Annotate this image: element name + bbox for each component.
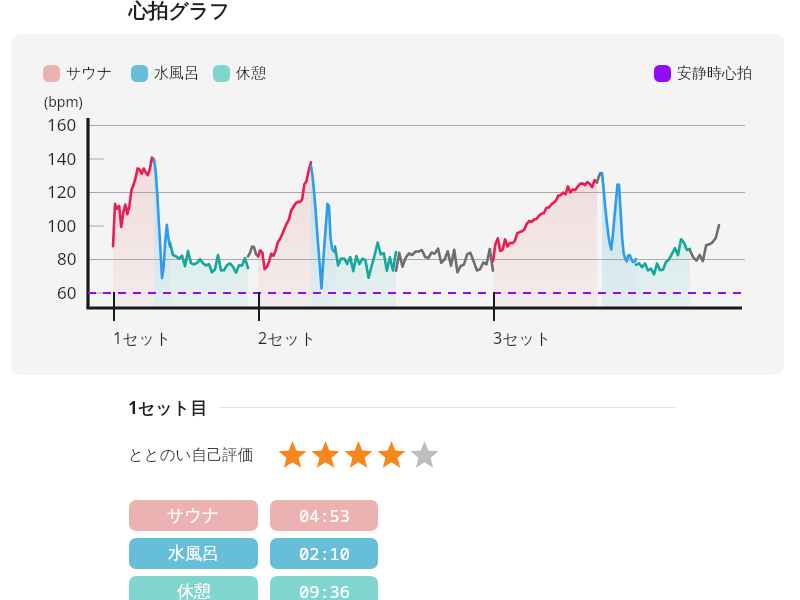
staticText: 60: [57, 281, 77, 304]
staticText: 休憩: [177, 581, 211, 600]
staticText: サウナ: [66, 64, 113, 83]
button[interactable]: 水風呂: [131, 64, 199, 83]
staticText: 80: [57, 247, 77, 270]
button[interactable]: Rate ${i + 1} star: [408, 440, 441, 470]
staticText: 水風呂: [168, 543, 219, 564]
staticText: サウナ: [167, 505, 220, 526]
staticText: 160: [47, 113, 77, 136]
staticText: 04:53: [299, 504, 350, 527]
staticText: 09:36: [299, 580, 350, 600]
staticText: ととのい自己評価: [128, 445, 254, 465]
staticText: 100: [47, 214, 77, 237]
button[interactable]: Rate ${i + 1} star: [276, 440, 309, 470]
staticText: 120: [47, 180, 77, 203]
button[interactable]: 02:10: [270, 538, 378, 569]
staticText: 02:10: [299, 542, 350, 565]
button[interactable]: Rate ${i + 1} star: [375, 440, 408, 470]
staticText: 1セット目: [128, 396, 207, 419]
button[interactable]: 安静時心拍: [654, 64, 752, 83]
staticText: 2セット: [258, 327, 317, 349]
staticText: 3セット: [493, 327, 552, 349]
staticText: (bpm): [44, 92, 83, 111]
button[interactable]: Rate ${i + 1} star: [342, 440, 375, 470]
staticText: 140: [47, 147, 77, 170]
button[interactable]: サウナ: [129, 500, 258, 531]
button[interactable]: サウナ: [43, 64, 113, 83]
button[interactable]: Rate ${i + 1} star: [309, 440, 342, 470]
button[interactable]: 04:53: [270, 500, 378, 531]
staticText: 安静時心拍: [677, 64, 752, 83]
staticText: 水風呂: [154, 64, 199, 83]
staticText: 休憩: [236, 64, 266, 83]
button[interactable]: 休憩: [129, 576, 258, 600]
button[interactable]: 休憩: [213, 64, 266, 83]
button[interactable]: 水風呂: [129, 538, 258, 569]
staticText: 心拍グラフ: [128, 0, 230, 24]
staticText: 1セット: [113, 327, 172, 349]
button[interactable]: 09:36: [270, 576, 378, 600]
